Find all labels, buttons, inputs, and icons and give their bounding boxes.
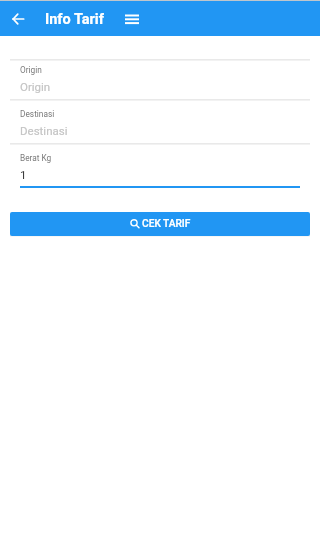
button[interactable] bbox=[10, 147, 310, 191]
staticText: 1 bbox=[20, 168, 27, 181]
button[interactable]: Back bbox=[4, 5, 32, 33]
button[interactable]: CEK TARIF bbox=[10, 212, 310, 236]
staticText: Info Tarif bbox=[45, 11, 104, 28]
button[interactable]: Menu bbox=[118, 5, 146, 33]
staticText: Origin bbox=[20, 65, 42, 75]
staticText: Berat Kg bbox=[20, 153, 52, 163]
staticText: Origin bbox=[20, 80, 51, 93]
staticText: Destinasi bbox=[20, 124, 68, 137]
button[interactable] bbox=[10, 103, 310, 147]
staticText: CEK TARIF bbox=[142, 218, 191, 230]
staticText: Destinasi bbox=[20, 109, 55, 119]
button[interactable] bbox=[10, 59, 310, 103]
